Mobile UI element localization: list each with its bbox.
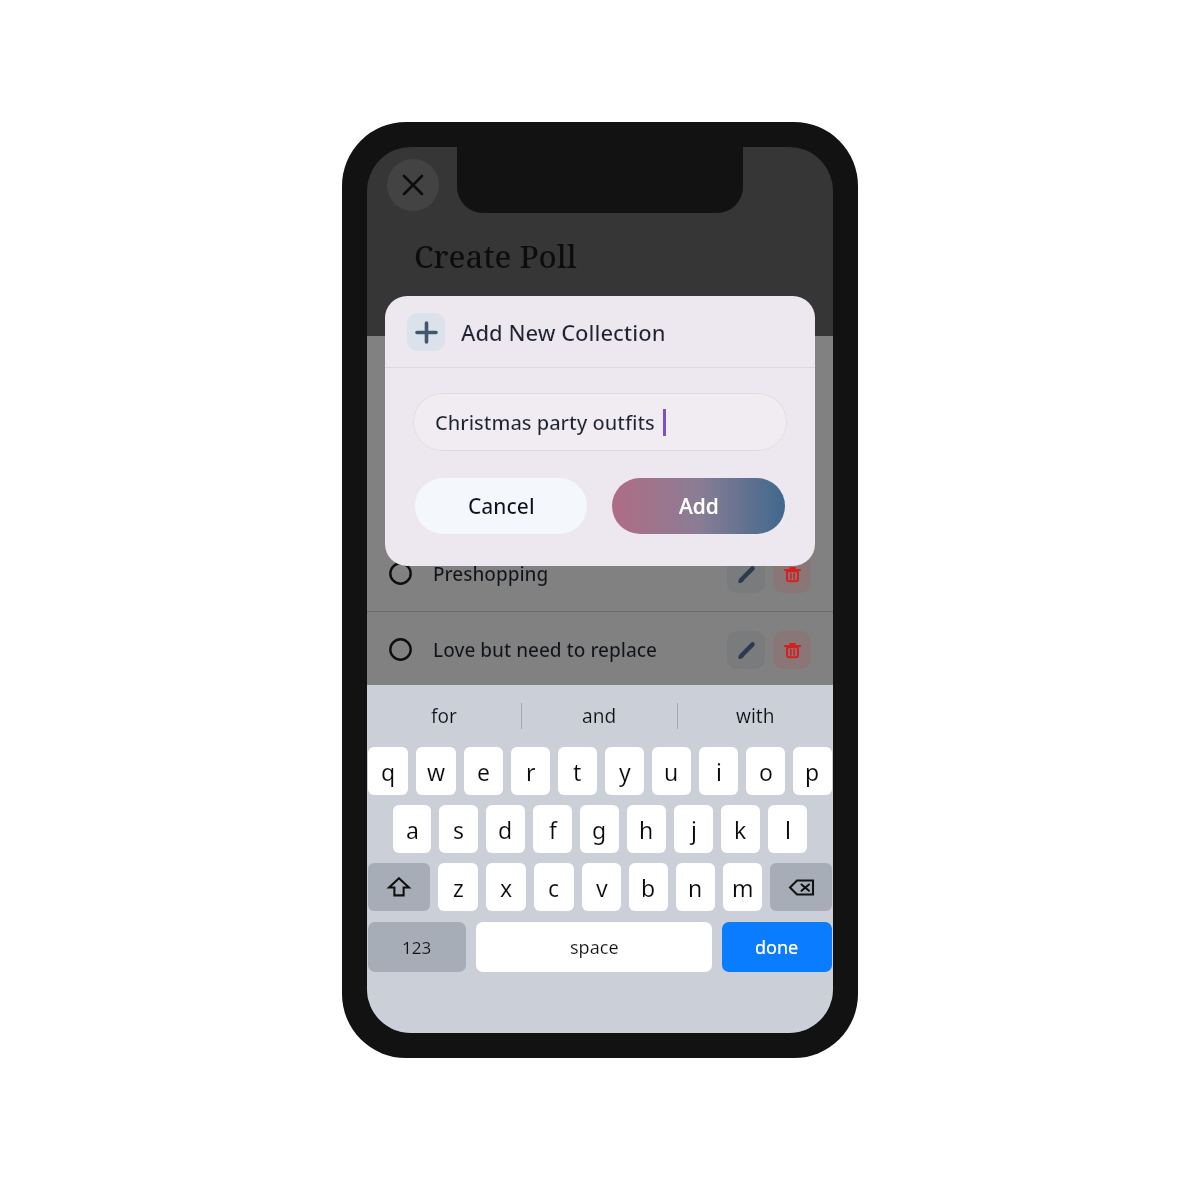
- button[interactable]: p: [793, 747, 832, 795]
- button[interactable]: Edit: [727, 631, 765, 669]
- staticText: o: [759, 756, 773, 787]
- staticText: u: [664, 756, 679, 787]
- staticText: a: [406, 814, 419, 845]
- staticText: done: [755, 935, 799, 960]
- button[interactable]: j: [674, 805, 713, 853]
- button[interactable]: y: [605, 747, 644, 795]
- button[interactable]: o: [746, 747, 785, 795]
- button[interactable]: c: [534, 863, 574, 911]
- button[interactable]: a: [393, 805, 431, 853]
- button[interactable]: l: [768, 805, 807, 853]
- button[interactable]: space: [476, 922, 712, 972]
- button[interactable]: d: [486, 805, 525, 853]
- button[interactable]: Close: [387, 159, 439, 211]
- button[interactable]: f: [533, 805, 572, 853]
- button[interactable]: Shift: [368, 863, 430, 911]
- button[interactable]: b: [629, 863, 668, 911]
- staticText: Create Poll: [414, 235, 577, 277]
- button[interactable]: Add New Collection: [385, 296, 815, 367]
- button[interactable]: Cancel: [415, 478, 587, 534]
- button[interactable]: h: [627, 805, 666, 853]
- staticText: q: [381, 756, 396, 787]
- button[interactable]: w: [416, 747, 456, 795]
- button[interactable]: Preshopping: [367, 536, 833, 611]
- button[interactable]: with: [678, 685, 833, 747]
- staticText: i: [716, 756, 722, 787]
- button[interactable]: u: [652, 747, 691, 795]
- button[interactable]: g: [580, 805, 619, 853]
- button[interactable]: x: [486, 863, 526, 911]
- staticText: x: [500, 872, 513, 903]
- staticText: Love but need to replace: [433, 637, 657, 663]
- staticText: and: [582, 703, 617, 729]
- staticText: for: [431, 703, 457, 729]
- staticText: space: [570, 935, 619, 960]
- button[interactable]: n: [676, 863, 715, 911]
- staticText: g: [592, 814, 607, 845]
- button[interactable]: t: [558, 747, 597, 795]
- button[interactable]: v: [582, 863, 621, 911]
- staticText: b: [641, 872, 656, 903]
- staticText: w: [427, 756, 446, 787]
- staticText: Christmas party outfits: [435, 409, 655, 436]
- staticText: s: [453, 814, 465, 845]
- button[interactable]: done: [722, 922, 832, 972]
- staticText: c: [548, 872, 560, 903]
- staticText: Select a collection: [389, 401, 543, 426]
- staticText: 123: [402, 936, 432, 959]
- button[interactable]: m: [723, 863, 762, 911]
- staticText: j: [691, 814, 697, 845]
- button[interactable]: for: [367, 685, 521, 747]
- button[interactable]: and: [522, 685, 677, 747]
- staticText: f: [549, 814, 557, 845]
- button[interactable]: k: [721, 805, 760, 853]
- staticText: v: [596, 872, 608, 903]
- button[interactable]: q: [368, 747, 408, 795]
- staticText: y: [619, 756, 631, 787]
- button[interactable]: z: [438, 863, 478, 911]
- staticText: Add: [679, 492, 719, 521]
- staticText: z: [453, 872, 464, 903]
- staticText: d: [498, 814, 513, 845]
- button[interactable]: e: [464, 747, 503, 795]
- button[interactable]: Love but need to replace: [367, 612, 833, 687]
- button[interactable]: Delete: [773, 631, 811, 669]
- staticText: with: [736, 703, 775, 729]
- button[interactable]: Add: [612, 478, 785, 534]
- staticText: Preshopping: [433, 561, 549, 587]
- staticText: p: [805, 756, 820, 787]
- button[interactable]: s: [439, 805, 478, 853]
- button[interactable]: 123: [368, 922, 466, 972]
- staticText: n: [688, 872, 703, 903]
- button[interactable]: r: [511, 747, 550, 795]
- staticText: Add New Collection: [461, 317, 666, 347]
- button[interactable]: Backspace: [770, 863, 832, 911]
- staticText: Help us choose outfits for the poll: [414, 305, 686, 328]
- button[interactable]: Delete: [773, 555, 811, 593]
- staticText: r: [526, 756, 536, 787]
- staticText: e: [477, 756, 490, 787]
- button[interactable]: i: [699, 747, 738, 795]
- staticText: k: [734, 814, 747, 845]
- staticText: t: [573, 756, 582, 787]
- staticText: m: [732, 872, 754, 903]
- staticText: Cancel: [468, 492, 535, 521]
- button[interactable]: Christmas party outfits: [413, 393, 787, 451]
- button[interactable]: Edit: [727, 555, 765, 593]
- staticText: h: [639, 814, 654, 845]
- staticText: l: [785, 814, 791, 845]
